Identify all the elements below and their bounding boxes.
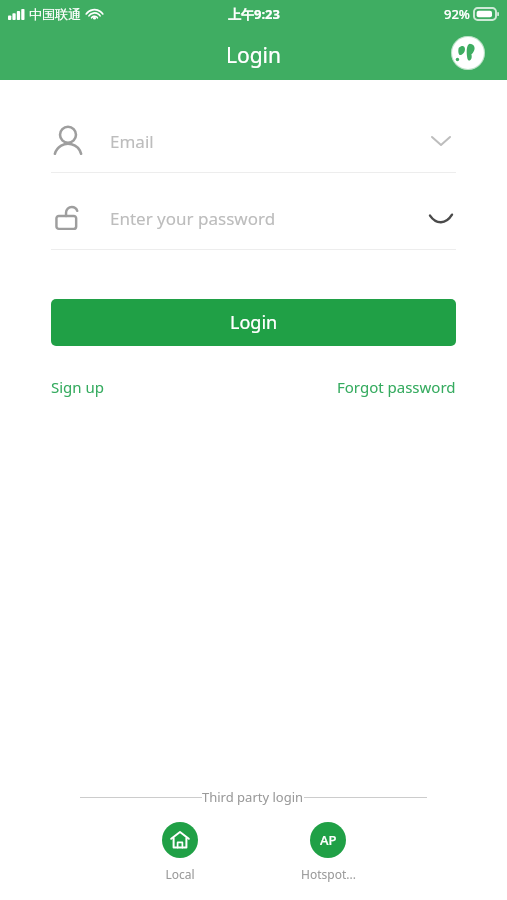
staticText: Hotspot...: [301, 866, 356, 882]
staticText: Email: [110, 130, 426, 153]
staticText: 上午9:23: [228, 5, 280, 23]
staticText: 中国联通: [29, 6, 81, 22]
button[interactable]: Show saved accounts: [426, 126, 456, 156]
button[interactable]: Email: [51, 110, 456, 172]
button[interactable]: Local: [142, 820, 218, 884]
staticText: AP: [320, 831, 337, 849]
button[interactable]: Sign up: [51, 373, 104, 401]
button[interactable]: Enter your password: [51, 187, 456, 249]
staticText: Third party login: [202, 788, 304, 806]
staticText: Forgot password: [337, 377, 456, 397]
button[interactable]: Language: [447, 32, 489, 74]
button[interactable]: Login: [51, 299, 456, 346]
staticText: Local: [165, 866, 195, 882]
staticText: Login: [230, 310, 278, 335]
staticText: Login: [226, 41, 282, 70]
button[interactable]: Forgot password: [337, 373, 456, 401]
staticText: Sign up: [51, 377, 104, 397]
staticText: 92%: [444, 5, 470, 23]
button[interactable]: Show password: [426, 203, 456, 233]
staticText: Enter your password: [110, 207, 426, 230]
button[interactable]: AP: [290, 820, 366, 884]
